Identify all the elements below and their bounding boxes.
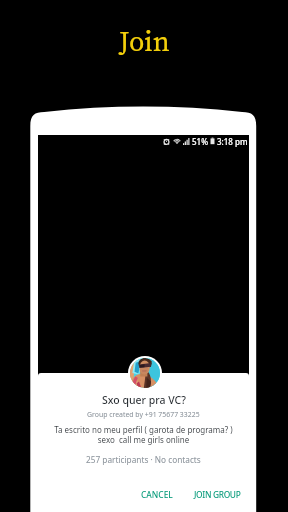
button[interactable]: CANCEL bbox=[134, 484, 180, 505]
staticText: 51% bbox=[192, 136, 208, 147]
staticText: Join bbox=[119, 22, 170, 60]
staticText: Sxo quer pra VC? bbox=[102, 393, 186, 407]
staticText: Ta escrito no meu perfil ( garota de pro… bbox=[54, 424, 233, 445]
staticText: Group created by +91 75677 33225 bbox=[87, 410, 200, 419]
button[interactable]: JOIN GROUP bbox=[187, 484, 248, 505]
staticText: JOIN GROUP bbox=[194, 489, 241, 500]
staticText: CANCEL bbox=[141, 489, 173, 500]
staticText: 3:18 pm bbox=[217, 136, 248, 147]
staticText: 257 participants · No contacts bbox=[86, 454, 201, 465]
